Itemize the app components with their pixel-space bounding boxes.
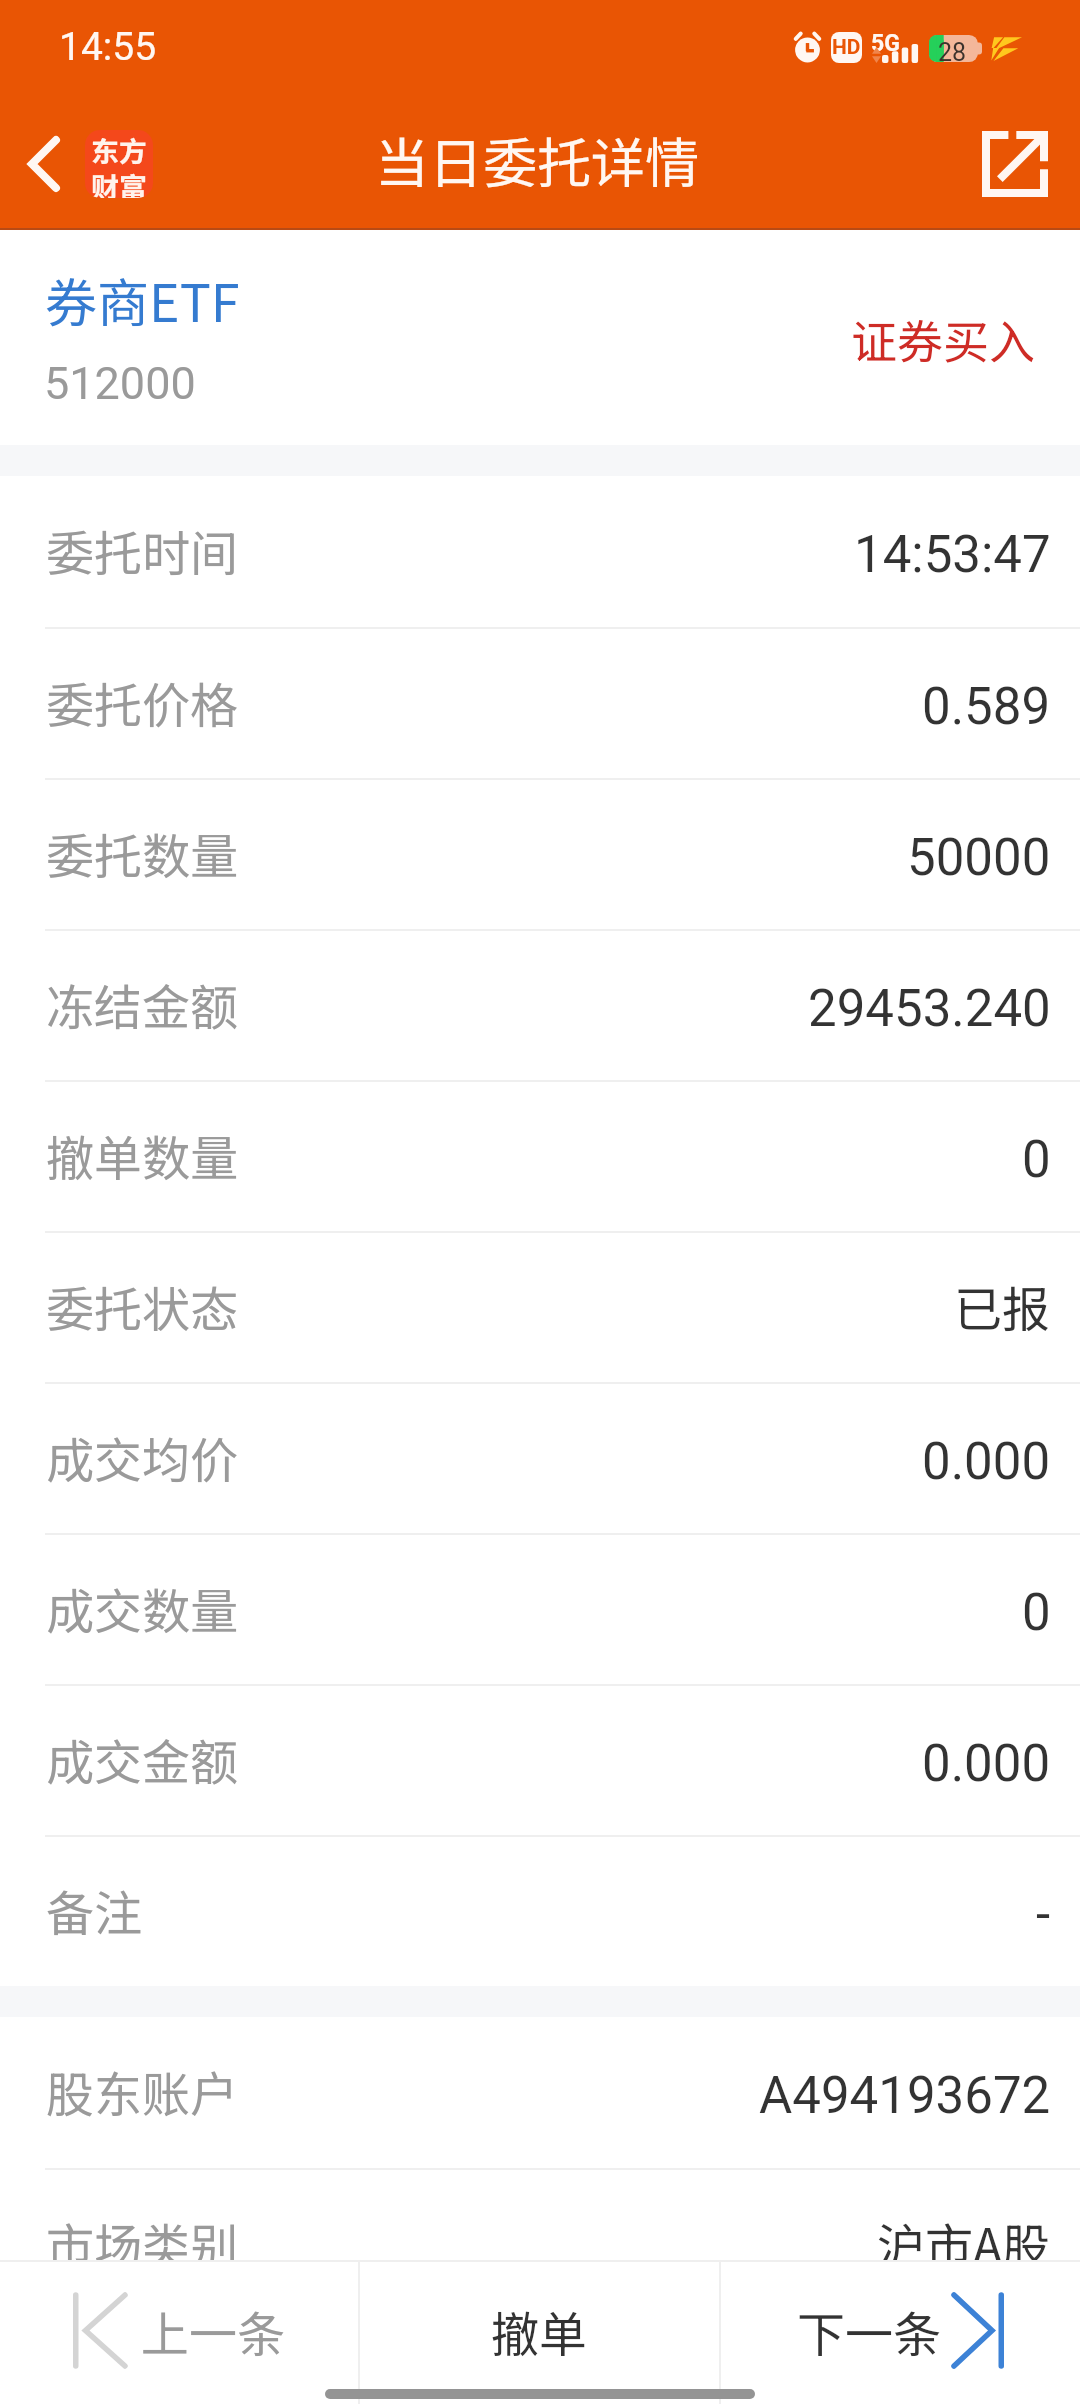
staticText: 东方: [91, 130, 148, 171]
button[interactable]: 备注: [0, 1837, 1080, 1986]
staticText: 撤单: [491, 2296, 588, 2366]
staticText: 14:55: [59, 24, 157, 70]
staticText: 上一条: [141, 2296, 286, 2366]
staticText: 0.589: [922, 677, 1051, 737]
staticText: 当日委托详情: [375, 120, 699, 198]
button[interactable]: 上一条: [0, 2262, 358, 2404]
button[interactable]: 下一条: [721, 2262, 1080, 2404]
button[interactable]: 冻结金额: [0, 931, 1080, 1080]
staticText: 委托时间: [46, 515, 239, 585]
staticText: -: [1036, 1885, 1051, 1945]
button[interactable]: 委托状态: [0, 1233, 1080, 1382]
staticText: 成交数量: [46, 1573, 239, 1643]
button[interactable]: 委托数量: [0, 780, 1080, 929]
staticText: 沪市A股: [877, 2208, 1051, 2278]
button[interactable]: 委托时间: [0, 476, 1080, 627]
staticText: 512000: [44, 357, 196, 410]
staticText: A494193672: [759, 2066, 1051, 2126]
staticText: 29453.240: [808, 979, 1051, 1039]
staticText: 成交均价: [46, 1422, 239, 1492]
button[interactable]: 撤单: [360, 2262, 719, 2404]
staticText: 0.000: [922, 1734, 1051, 1794]
button[interactable]: 成交均价: [0, 1384, 1080, 1533]
staticText: 股东账户: [46, 2056, 239, 2126]
staticText: 委托价格: [46, 667, 239, 737]
button[interactable]: Share: [962, 100, 1080, 228]
button[interactable]: 市场类别: [0, 2170, 1080, 2319]
staticText: 0: [1022, 1583, 1051, 1643]
button[interactable]: 成交金额: [0, 1686, 1080, 1835]
staticText: 已报: [954, 1271, 1051, 1341]
staticText: 备注: [46, 1875, 143, 1945]
button[interactable]: 成交数量: [0, 1535, 1080, 1684]
staticText: 冻结金额: [46, 969, 239, 1039]
staticText: 财富: [91, 166, 148, 198]
staticText: 14:53:47: [854, 525, 1051, 585]
staticText: 50000: [907, 828, 1051, 888]
staticText: 证券买入: [851, 306, 1035, 373]
staticText: 委托数量: [46, 818, 239, 888]
staticText: 券商ETF: [45, 262, 240, 337]
staticText: 撤单数量: [46, 1120, 239, 1190]
button[interactable]: 券商ETF: [0, 230, 1080, 445]
staticText: 0: [1022, 1130, 1051, 1190]
staticText: 成交金额: [46, 1724, 239, 1794]
button[interactable]: 股东账户: [0, 2017, 1080, 2168]
button[interactable]: 委托价格: [0, 629, 1080, 778]
staticText: 下一条: [797, 2296, 942, 2366]
staticText: 5G: [871, 30, 900, 57]
staticText: 28: [938, 38, 967, 67]
staticText: 委托状态: [46, 1271, 239, 1341]
staticText: 0.000: [922, 1432, 1051, 1492]
button[interactable]: 撤单数量: [0, 1082, 1080, 1231]
staticText: HD: [832, 35, 861, 60]
button[interactable]: Back: [0, 100, 173, 228]
staticText: 市场类别: [46, 2208, 239, 2278]
